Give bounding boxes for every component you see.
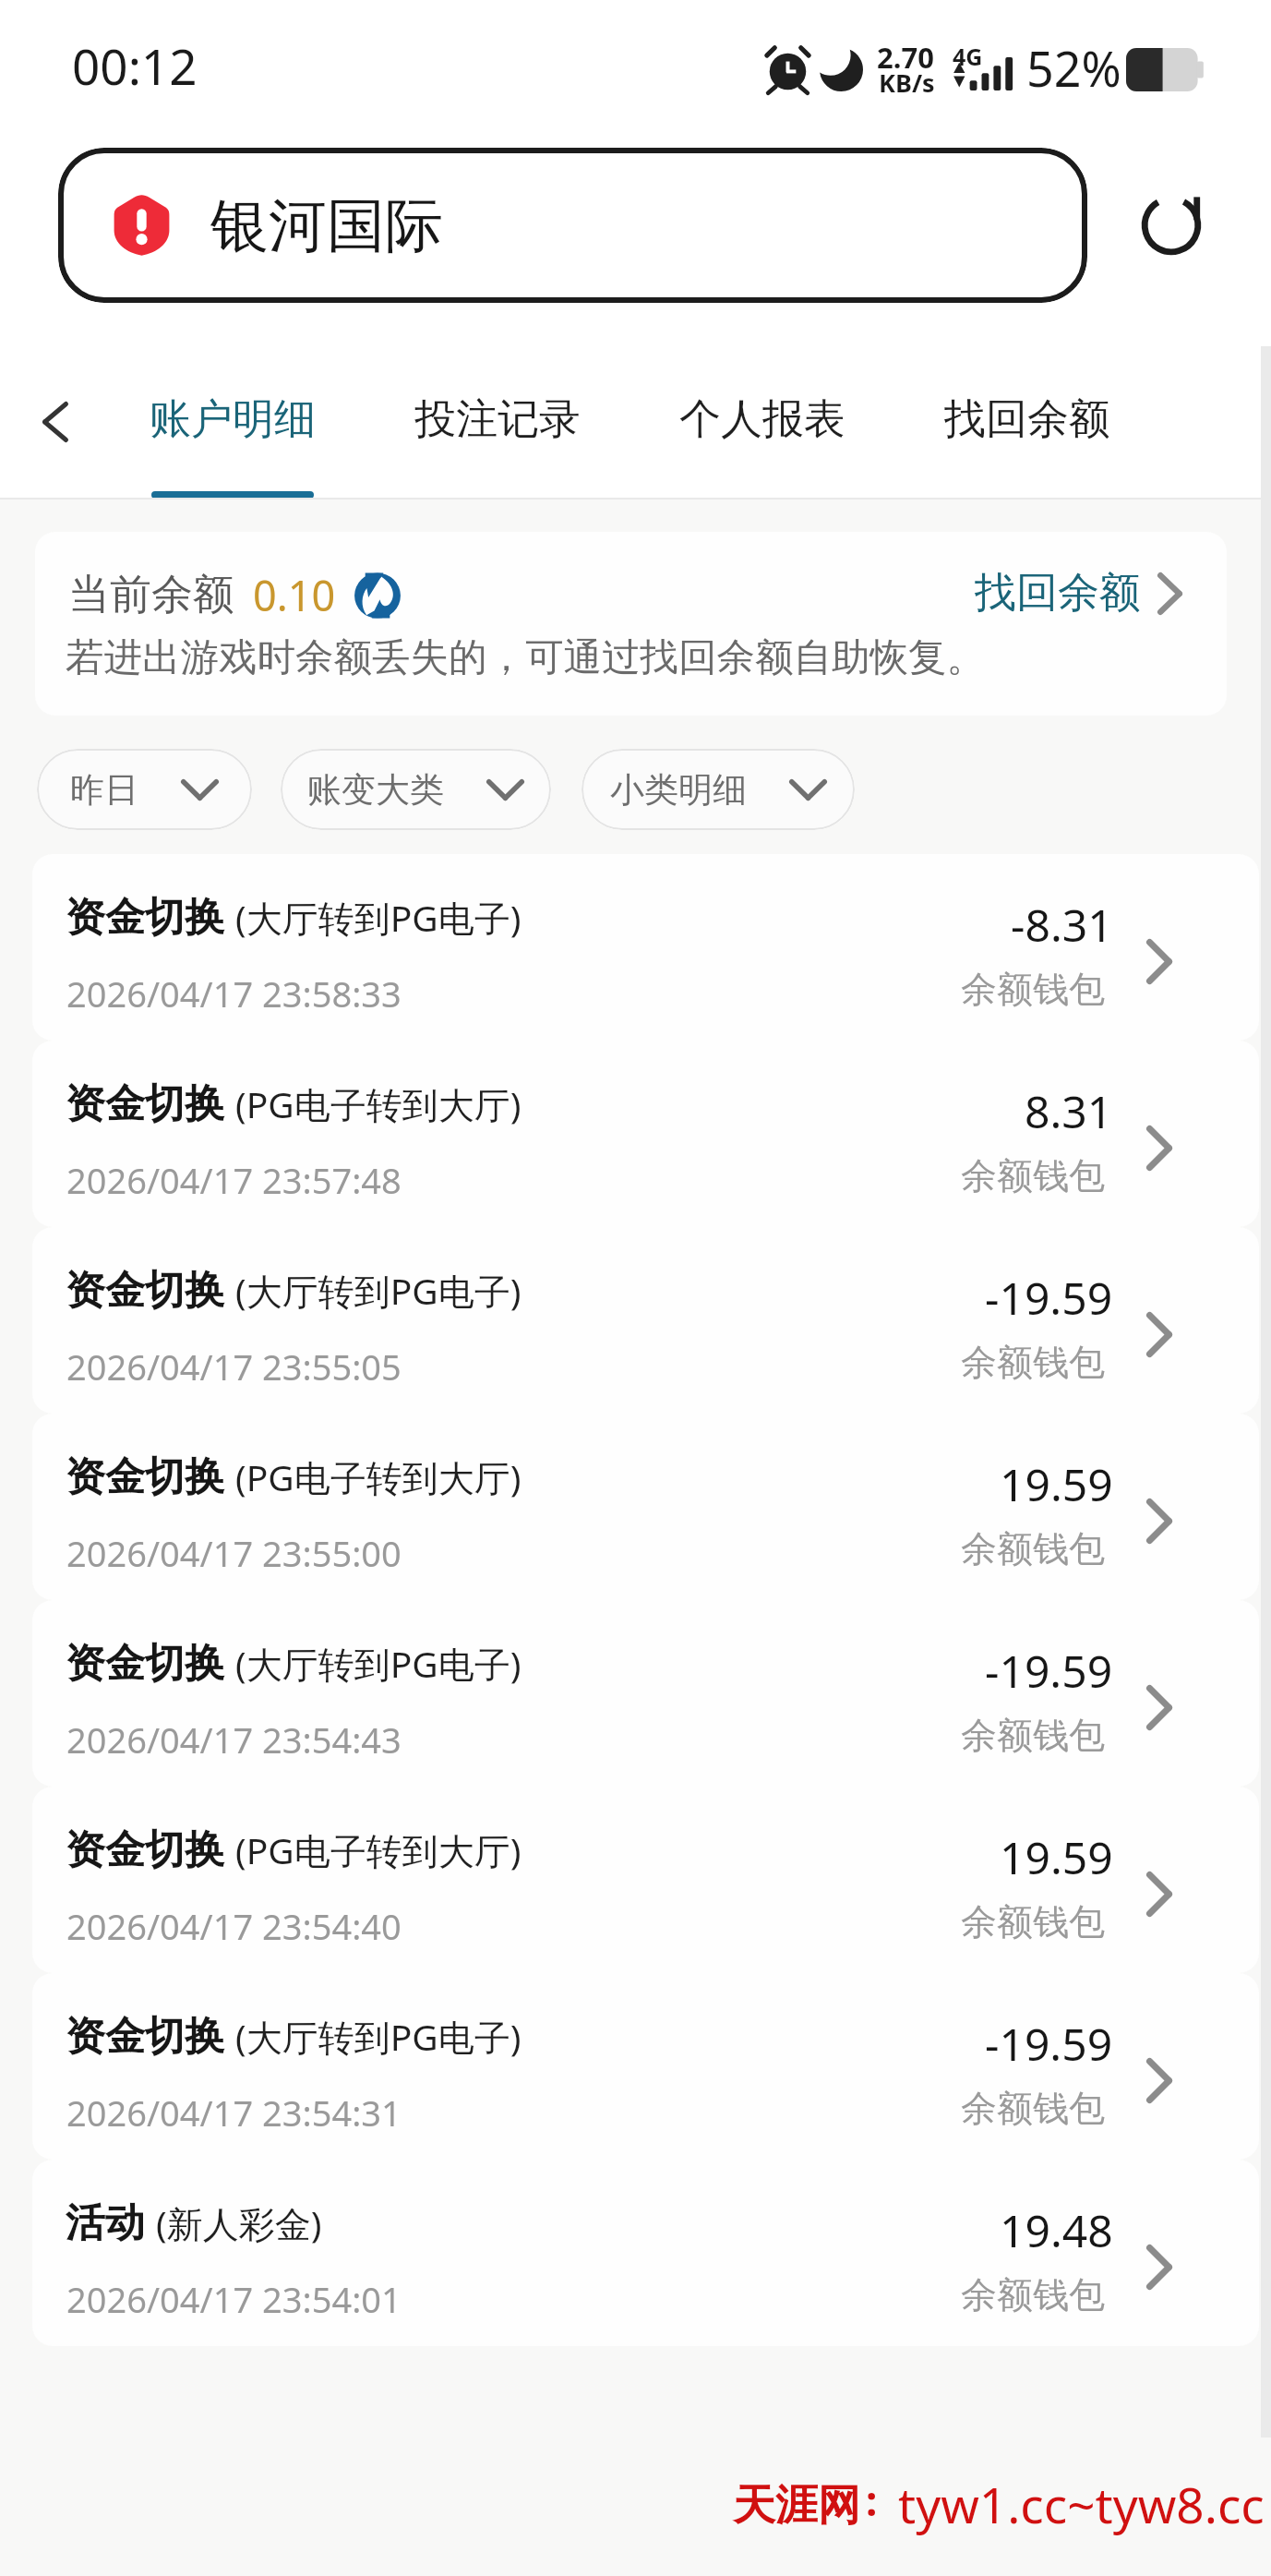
button[interactable]: 资金切换 xyxy=(32,1973,1259,2160)
staticText: 00:12 xyxy=(72,32,198,99)
staticText: 找回余额 xyxy=(944,393,1110,446)
staticText: 资金切换 xyxy=(66,1825,224,1875)
staticText: 余额钱包 xyxy=(961,2272,1105,2317)
staticText: 2026/04/17 23:54:40 xyxy=(66,1902,402,1950)
staticText: 资金切换 xyxy=(66,1266,224,1316)
button[interactable]: 资金切换 xyxy=(32,1041,1259,1227)
button[interactable]: 个人报表 xyxy=(642,319,882,499)
staticText: 余额钱包 xyxy=(961,1153,1105,1198)
button[interactable]: 银河国际 xyxy=(58,148,1087,303)
staticText: 资金切换 xyxy=(66,1639,224,1689)
staticText: (大厅转到PG电子) xyxy=(235,893,522,942)
button[interactable]: 当前余额 xyxy=(35,532,1227,716)
staticText: 找回余额 xyxy=(975,567,1141,620)
staticText: 资金切换 xyxy=(66,1452,224,1502)
staticText: 当前余额 xyxy=(68,569,234,621)
button[interactable]: 资金切换 xyxy=(32,1600,1259,1787)
staticText: 银河国际 xyxy=(210,189,443,262)
staticText: 19.48 xyxy=(1000,2200,1113,2260)
staticText: (大厅转到PG电子) xyxy=(235,1266,522,1315)
staticText: (PG电子转到大厅) xyxy=(235,1079,522,1128)
staticText: 2026/04/17 23:55:00 xyxy=(66,1529,402,1577)
staticText: 52% xyxy=(1026,35,1121,101)
staticText: tyw1.cc~tyw8.cc xyxy=(898,2471,1265,2537)
staticText: 个人报表 xyxy=(679,393,845,446)
staticText: 昨日 xyxy=(70,768,138,812)
staticText: -19.59 xyxy=(985,1268,1113,1328)
button[interactable]: 昨日 xyxy=(37,749,252,830)
button[interactable]: 资金切换 xyxy=(32,1787,1259,1973)
button[interactable]: 账户明细 xyxy=(113,319,353,499)
staticText: 账户明细 xyxy=(150,393,316,446)
staticText: 2026/04/17 23:55:05 xyxy=(66,1342,402,1390)
button[interactable]: 投注记录 xyxy=(378,319,618,499)
staticText: 8.31 xyxy=(1025,1081,1113,1141)
staticText: (PG电子转到大厅) xyxy=(235,1452,522,1501)
staticText: 余额钱包 xyxy=(961,1713,1105,1758)
button[interactable]: 资金切换 xyxy=(32,1227,1259,1414)
staticText: 账变大类 xyxy=(307,768,444,812)
staticText: 2026/04/17 23:54:43 xyxy=(66,1715,402,1763)
button[interactable]: 账变大类 xyxy=(281,749,551,830)
staticText: KB/s xyxy=(879,66,935,100)
button[interactable]: 资金切换 xyxy=(32,1414,1259,1600)
staticText: 2026/04/17 23:54:31 xyxy=(66,2088,402,2137)
staticText: 资金切换 xyxy=(66,2012,224,2062)
staticText: 19.59 xyxy=(1000,1454,1113,1514)
staticText: -19.59 xyxy=(985,1641,1113,1701)
staticText: 若进出游戏时余额丢失的，可通过找回余额自助恢复。 xyxy=(66,633,985,681)
button[interactable]: Back xyxy=(13,369,98,474)
button[interactable]: 资金切换 xyxy=(32,854,1259,1041)
staticText: 小类明细 xyxy=(610,768,747,812)
staticText: 2026/04/17 23:54:01 xyxy=(66,2275,402,2323)
staticText: 余额钱包 xyxy=(961,2086,1105,2131)
staticText: 投注记录 xyxy=(414,393,581,446)
staticText: 活动 xyxy=(66,2198,145,2248)
button[interactable]: Refresh page xyxy=(1112,166,1230,284)
button[interactable]: 小类明细 xyxy=(582,749,855,830)
staticText: (新人彩金) xyxy=(156,2198,322,2247)
staticText: (大厅转到PG电子) xyxy=(235,2012,522,2061)
staticText: 余额钱包 xyxy=(961,967,1105,1012)
button[interactable]: 活动 xyxy=(32,2160,1259,2346)
staticText: 0.10 xyxy=(253,567,336,623)
staticText: (PG电子转到大厅) xyxy=(235,1825,522,1874)
staticText: 4G xyxy=(953,41,983,72)
staticText: 2026/04/17 23:58:33 xyxy=(66,969,402,1017)
staticText: 资金切换 xyxy=(66,893,224,943)
staticText: -19.59 xyxy=(985,2014,1113,2074)
staticText: (大厅转到PG电子) xyxy=(235,1639,522,1688)
staticText: 余额钱包 xyxy=(961,1340,1105,1385)
staticText: : xyxy=(866,2473,878,2528)
staticText: 2.70 xyxy=(877,38,934,77)
staticText: 余额钱包 xyxy=(961,1899,1105,1944)
staticText: -8.31 xyxy=(1011,895,1113,955)
staticText: 余额钱包 xyxy=(961,1526,1105,1571)
staticText: 2026/04/17 23:57:48 xyxy=(66,1156,402,1204)
staticText: 19.59 xyxy=(1000,1827,1113,1887)
button[interactable]: 找回余额 xyxy=(907,319,1147,499)
staticText: 资金切换 xyxy=(66,1079,224,1129)
staticText: 天涯网 xyxy=(733,2479,860,2533)
